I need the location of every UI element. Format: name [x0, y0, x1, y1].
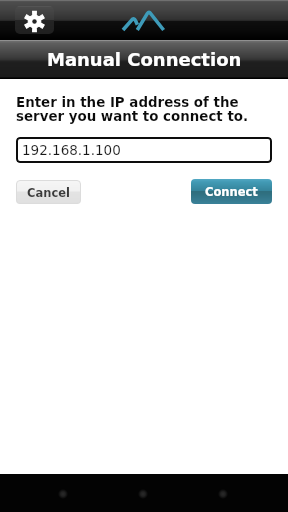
button[interactable]: Cancel — [16, 180, 81, 204]
staticText: Manual Connection — [47, 49, 242, 70]
staticText: Cancel — [27, 186, 70, 199]
button[interactable]: Settings — [15, 6, 54, 34]
staticText: Enter in the IP address of the server yo… — [16, 95, 249, 124]
staticText: 192.168.1.100 — [22, 142, 121, 158]
button[interactable]: 192.168.1.100 — [16, 137, 272, 163]
button[interactable]: Connect — [191, 179, 272, 204]
staticText: Connect — [205, 185, 258, 198]
